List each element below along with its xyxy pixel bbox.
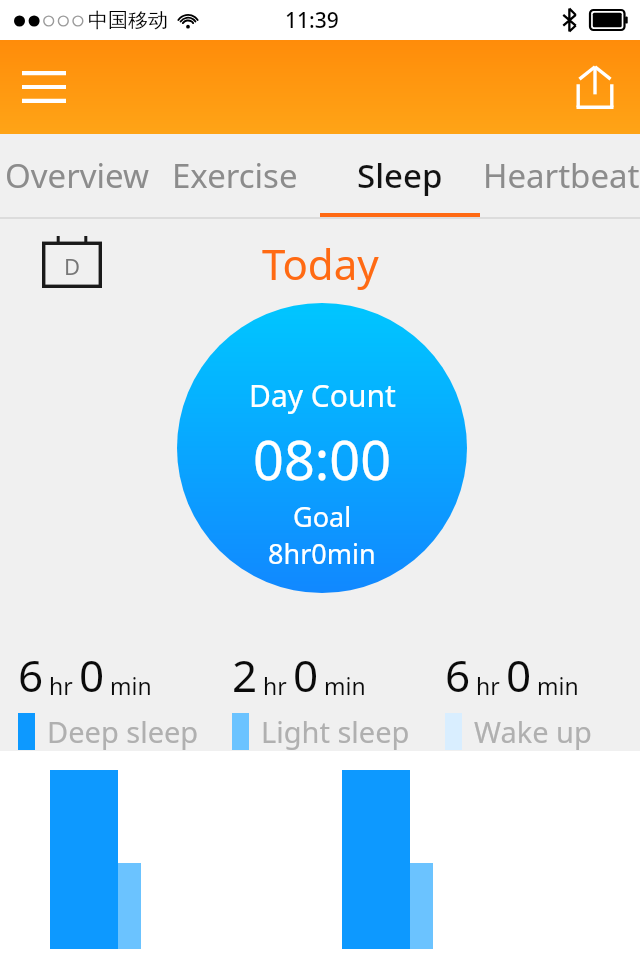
button[interactable] [0, 751, 640, 949]
staticText: min [110, 670, 152, 701]
staticText: hr [263, 670, 287, 701]
staticText: Deep sleep [47, 712, 199, 751]
staticText: Exercise [172, 153, 298, 198]
staticText: Day Count [249, 375, 396, 416]
staticText: Wake up [474, 712, 592, 751]
button[interactable]: Overview [2, 134, 158, 217]
staticText: 11:39 [285, 6, 339, 35]
staticText: Sleep [357, 153, 443, 198]
staticText: 0 [79, 645, 105, 705]
button[interactable]: Menu [12, 58, 76, 116]
button[interactable]: 6 [427, 641, 640, 751]
button[interactable]: Exercise [168, 134, 314, 217]
button[interactable]: 6 [0, 641, 214, 751]
staticText: D [64, 251, 81, 281]
staticText: hr [49, 670, 73, 701]
button[interactable]: Pick date [36, 231, 108, 293]
staticText: Heartbeat [483, 153, 640, 198]
button[interactable]: Share [564, 56, 626, 118]
staticText: hr [476, 670, 500, 701]
staticText: 08:00 [253, 422, 392, 496]
staticText: 0 [506, 645, 532, 705]
staticText: Goal [293, 498, 352, 535]
staticText: 8hr0min [268, 535, 376, 572]
staticText: Overview [5, 153, 149, 198]
button[interactable]: 2 [214, 641, 427, 751]
button[interactable]: Heartbeat [480, 134, 640, 217]
staticText: 2 [232, 645, 258, 705]
staticText: min [324, 670, 366, 701]
staticText: 中国移动 [88, 8, 168, 33]
staticText: 6 [445, 645, 471, 705]
staticText: 0 [293, 645, 319, 705]
staticText: min [537, 670, 579, 701]
staticText: Light sleep [261, 712, 410, 751]
staticText: 6 [18, 645, 44, 705]
button[interactable]: Sleep [320, 134, 480, 217]
staticText: Today [262, 235, 379, 292]
